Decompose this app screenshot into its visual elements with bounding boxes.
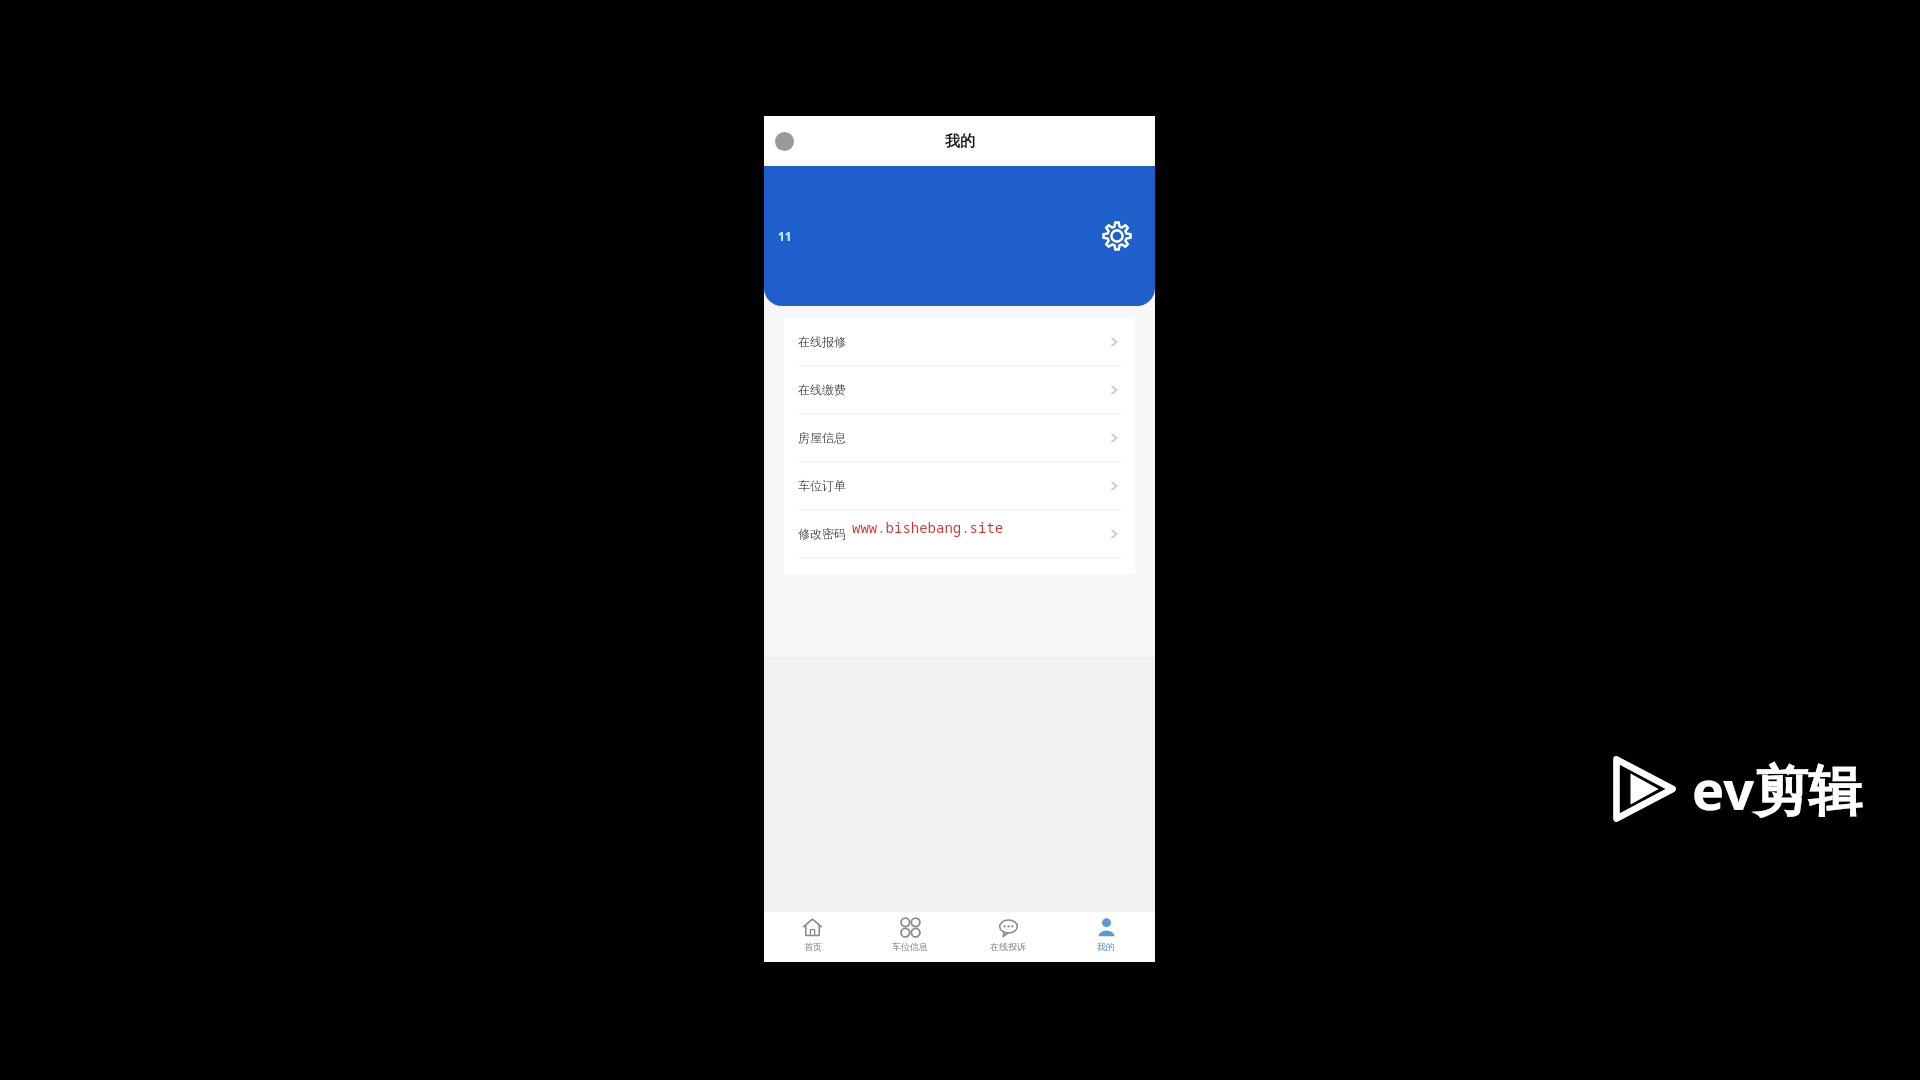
staticText: 在线投诉: [990, 941, 1026, 952]
button[interactable]: 在线投诉: [959, 912, 1057, 962]
staticText: 首页: [804, 941, 822, 952]
staticText: 我的: [945, 132, 975, 151]
button[interactable]: 修改密码: [784, 510, 1135, 557]
button[interactable]: 车位订单: [784, 462, 1135, 509]
staticText: 修改密码: [798, 526, 846, 541]
button[interactable]: 在线缴费: [784, 366, 1135, 413]
staticText: www.bishebang.site: [852, 518, 1004, 537]
staticText: 在线报修: [798, 334, 846, 349]
staticText: 车位信息: [892, 941, 928, 952]
staticText: 11: [778, 228, 792, 244]
button[interactable]: 房屋信息: [784, 414, 1135, 461]
button[interactable]: 在线报修: [784, 318, 1135, 365]
button[interactable]: 我的: [1057, 912, 1155, 962]
button[interactable]: 车位信息: [861, 912, 959, 962]
staticText: ev剪辑: [1692, 752, 1862, 826]
staticText: 我的: [1097, 941, 1115, 952]
staticText: 车位订单: [798, 478, 846, 493]
button[interactable]: 设置 Settings: [1097, 216, 1137, 256]
button[interactable]: 首页: [764, 912, 861, 962]
staticText: 房屋信息: [798, 430, 846, 445]
staticText: 在线缴费: [798, 382, 846, 397]
